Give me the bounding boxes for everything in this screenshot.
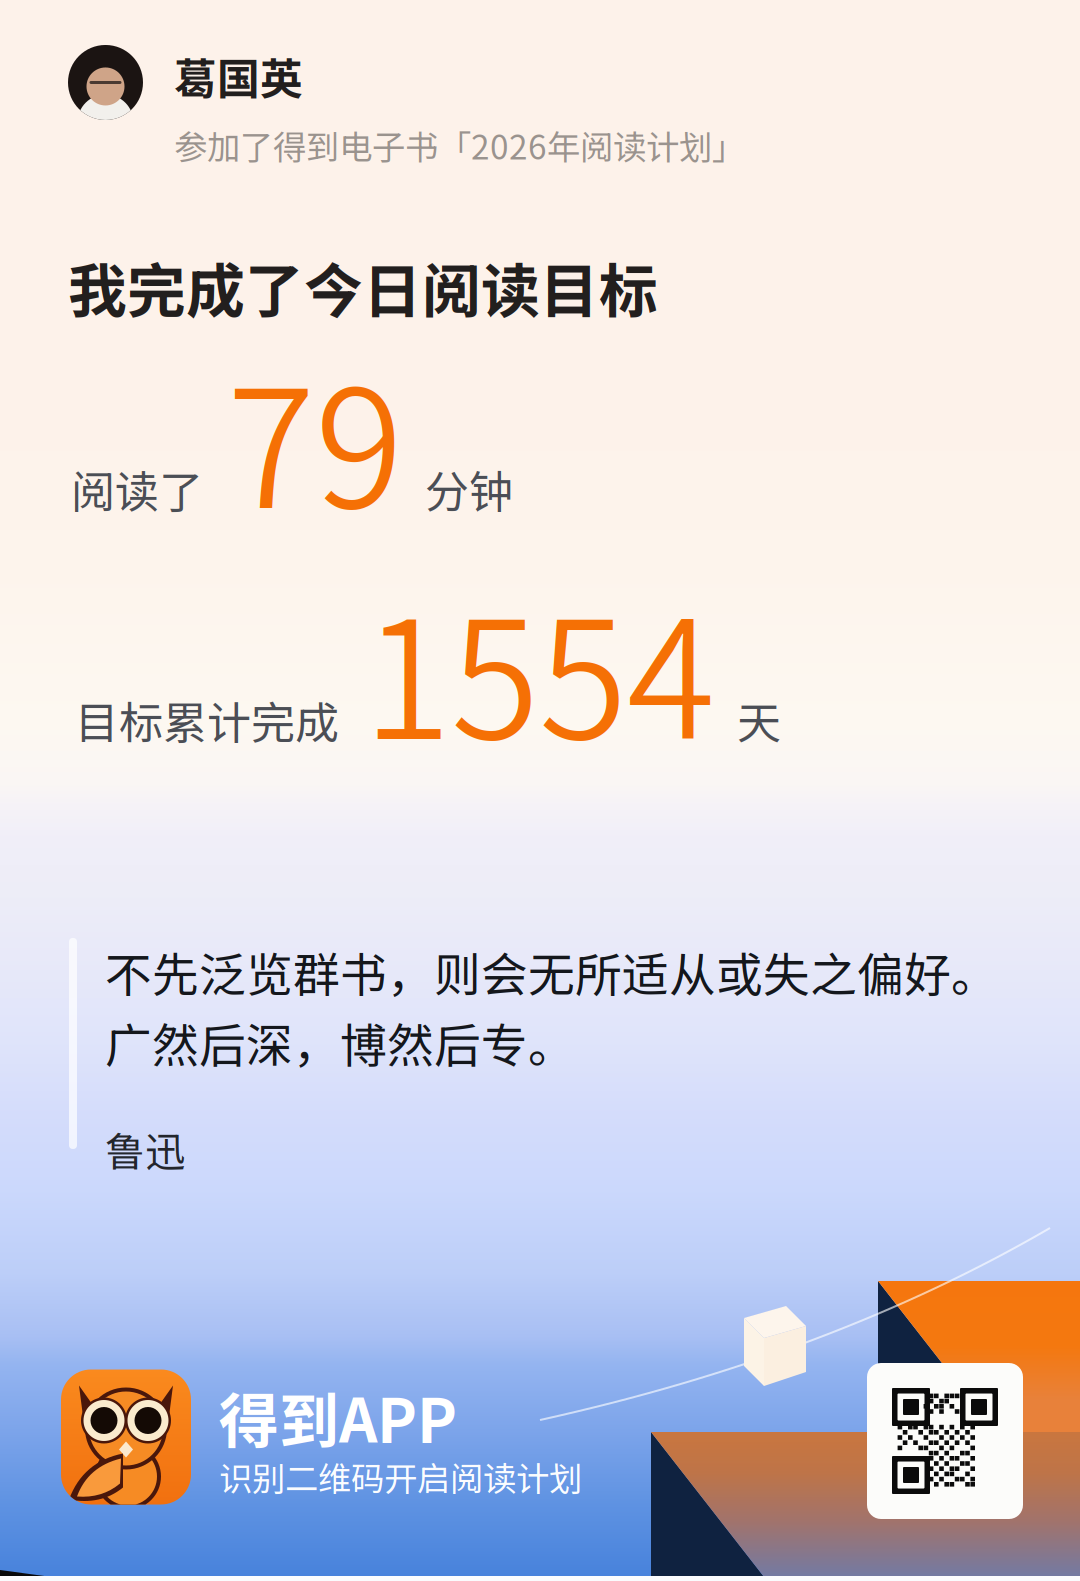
staticText: 79 — [227, 319, 403, 555]
staticText: 阅读了 — [71, 457, 203, 521]
staticText: 目标累计完成 — [75, 688, 339, 752]
staticText: 我完成了今日阅读目标 — [68, 244, 658, 329]
button[interactable]: 得到APP — [61, 1369, 1080, 1504]
staticText: 鲁迅 — [105, 1120, 185, 1178]
staticText: 1554 — [363, 550, 715, 786]
staticText: 葛国英 — [174, 45, 303, 107]
staticText: 参加了得到电子书「2026年阅读计划」 — [174, 121, 745, 169]
staticText: 天 — [737, 688, 781, 752]
staticText: 识别二维码开启阅读计划 — [219, 1452, 582, 1501]
staticText: 不先泛览群书，则会无所适从或失之偏好。 — [105, 938, 998, 1006]
staticText: 分钟 — [425, 457, 513, 521]
button[interactable]: 扫描二维码 — [867, 1363, 1023, 1519]
staticText: 得到APP — [219, 1373, 457, 1460]
button[interactable]: 葛国英 — [68, 45, 1080, 169]
staticText: 广然后深，博然后专。 — [105, 1008, 575, 1076]
